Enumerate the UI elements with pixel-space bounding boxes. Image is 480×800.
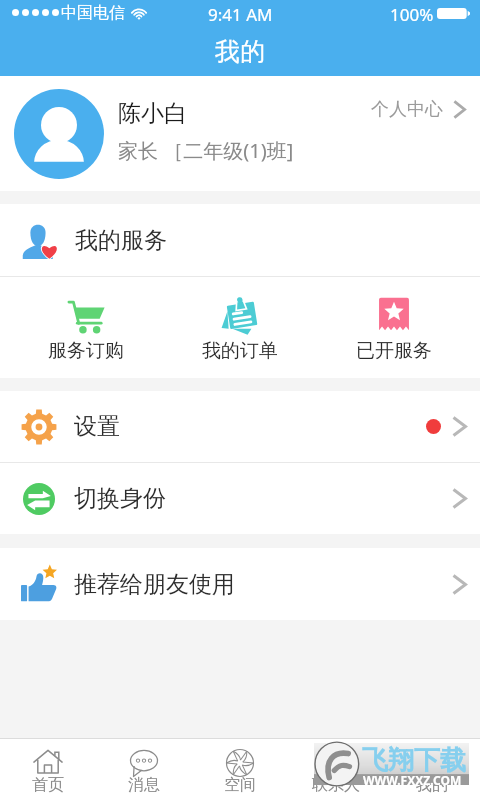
staticText: 首页: [32, 775, 64, 795]
button[interactable]: 我的订单: [163, 292, 317, 363]
button[interactable]: 联系人: [288, 742, 384, 798]
staticText: 联系人: [312, 775, 360, 795]
staticText: 个人中心: [371, 98, 443, 121]
button[interactable]: 推荐给朋友使用: [0, 548, 480, 620]
button[interactable]: 首页: [0, 742, 96, 798]
button[interactable]: 空间: [192, 742, 288, 798]
button[interactable]: 陈小白: [0, 76, 480, 191]
staticText: 陈小白: [118, 99, 187, 128]
staticText: 100%: [390, 3, 434, 26]
staticText: 服务订购: [48, 339, 124, 363]
staticText: 已开服务: [356, 339, 432, 363]
staticText: 飞翔下载: [362, 744, 466, 777]
staticText: 设置: [74, 412, 120, 441]
staticText: 9:41 AM: [208, 3, 273, 26]
staticText: 我的: [416, 775, 448, 795]
button[interactable]: 设置: [0, 391, 480, 462]
button[interactable]: 服务订购: [9, 292, 163, 363]
button[interactable]: 已开服务: [317, 292, 471, 363]
button[interactable]: 我的: [384, 742, 480, 798]
staticText: 家长 ［二年级(1)班]: [118, 137, 294, 164]
staticText: 消息: [128, 775, 160, 795]
staticText: 切换身份: [74, 484, 166, 513]
staticText: 推荐给朋友使用: [74, 570, 235, 599]
button[interactable]: 切换身份: [0, 463, 480, 534]
staticText: 我的: [215, 36, 265, 67]
staticText: 中国电信: [61, 3, 125, 23]
staticText: 空间: [224, 775, 256, 795]
staticText: WWW.FXXZ.COM: [363, 772, 462, 788]
button[interactable]: 我的服务: [0, 204, 480, 276]
staticText: 我的服务: [75, 226, 167, 255]
staticText: 我的订单: [202, 339, 278, 363]
button[interactable]: 消息: [96, 742, 192, 798]
